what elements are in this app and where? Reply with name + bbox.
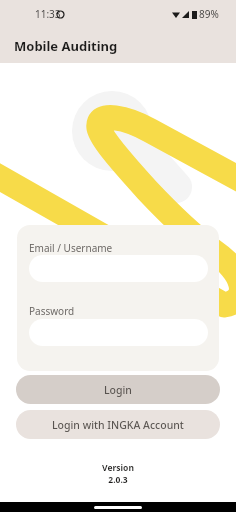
staticText: Mobile Auditing (14, 37, 118, 55)
staticText: 11:33 (35, 7, 61, 21)
staticText: 89% (199, 7, 219, 21)
staticText: Email / Username (29, 241, 113, 255)
button[interactable]: Login (16, 375, 220, 404)
staticText: Login (104, 383, 132, 397)
staticText: Password (29, 304, 75, 318)
staticText: Login with INGKA Account (52, 418, 184, 432)
button[interactable]: Login with INGKA Account (16, 410, 220, 439)
staticText: Version 2.0.3 (0, 462, 236, 486)
